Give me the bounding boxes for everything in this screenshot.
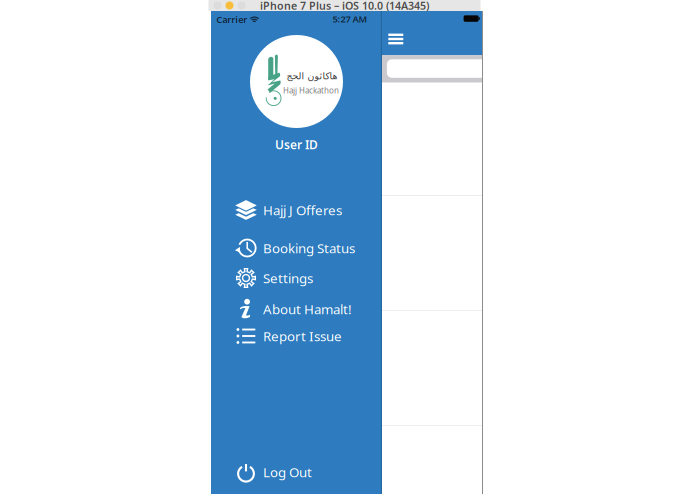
staticText: Hajj Hackathon — [283, 85, 339, 96]
staticText: Booking Status — [263, 239, 355, 257]
staticText: هاكاثون الحج — [286, 71, 337, 81]
staticText: Report Issue — [263, 327, 342, 345]
staticText: Hajj J Offeres — [263, 201, 342, 219]
button[interactable]: Booking Status — [211, 235, 382, 261]
staticText: User ID — [275, 136, 318, 152]
staticText: 5:27 AM — [332, 13, 367, 25]
staticText: Settings — [263, 269, 313, 287]
button[interactable]: Hajj J Offeres — [211, 197, 382, 223]
button[interactable]: About Hamalt! — [211, 296, 382, 322]
staticText: Log Out — [263, 463, 312, 481]
staticText: About Hamalt! — [263, 300, 352, 318]
button[interactable]: Log Out — [211, 459, 382, 485]
button[interactable]: Report Issue — [211, 323, 382, 349]
button[interactable]: Settings — [211, 265, 382, 291]
button[interactable]: Menu — [380, 26, 411, 52]
staticText: iPhone 7 Plus – iOS 10.0 (14A345) — [260, 0, 429, 13]
staticText: Carrier — [216, 13, 247, 26]
